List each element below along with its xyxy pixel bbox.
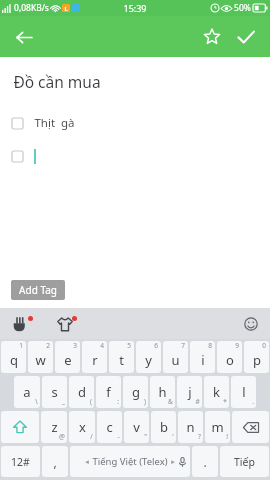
button[interactable]: l xyxy=(231,376,256,408)
staticText: Thịt gà xyxy=(34,115,75,131)
staticText: " xyxy=(144,432,147,441)
staticText: o xyxy=(226,351,234,369)
staticText: 0 xyxy=(262,341,266,350)
button[interactable]: s xyxy=(42,376,67,408)
staticText: y xyxy=(145,351,152,369)
button[interactable]: h xyxy=(150,376,175,408)
staticText: u xyxy=(171,351,180,369)
button[interactable]: n xyxy=(178,411,203,443)
staticText: , xyxy=(53,454,57,470)
button[interactable]: Emoji xyxy=(238,311,264,337)
staticText: . xyxy=(252,397,254,406)
staticText: c xyxy=(106,418,113,436)
staticText: h xyxy=(158,383,167,401)
button[interactable]: Themes xyxy=(52,311,78,337)
button[interactable]: , xyxy=(42,446,68,477)
button[interactable]: f xyxy=(96,376,121,408)
button[interactable]: 7 xyxy=(163,341,188,373)
button[interactable]: 5 xyxy=(109,341,134,373)
button[interactable]: 1 xyxy=(1,341,26,373)
staticText: 6 xyxy=(154,341,158,350)
staticText: 0,08KB/s xyxy=(14,2,49,14)
staticText: & xyxy=(168,397,173,406)
staticText: ( xyxy=(90,397,92,406)
staticText: @ xyxy=(59,432,65,441)
staticText: * xyxy=(223,397,227,406)
staticText: ▸ xyxy=(171,458,175,466)
staticText: p xyxy=(253,351,261,369)
staticText: : xyxy=(117,397,119,406)
staticText: v xyxy=(133,418,140,436)
button[interactable]: 8 xyxy=(190,341,215,373)
staticText: z xyxy=(51,418,58,436)
staticText: l xyxy=(242,383,246,401)
button[interactable]: 4 xyxy=(82,341,107,373)
button[interactable] xyxy=(0,145,270,167)
button[interactable]: 9 xyxy=(217,341,242,373)
staticText: - xyxy=(117,432,120,441)
staticText: a xyxy=(23,383,31,401)
button[interactable]: Favorite xyxy=(196,21,228,53)
button[interactable]: Thịt gà xyxy=(0,112,270,134)
staticText: Đồ cần mua xyxy=(13,71,101,92)
staticText: ' xyxy=(172,432,174,441)
staticText: 3 xyxy=(73,341,77,350)
staticText: ? xyxy=(198,432,201,441)
staticText: w xyxy=(35,351,46,369)
button[interactable]: Add Tag xyxy=(11,280,65,300)
staticText: _ xyxy=(62,397,65,406)
staticText: 15:39 xyxy=(123,2,147,14)
staticText: ) xyxy=(144,397,146,406)
staticText: Add Tag xyxy=(19,283,57,297)
staticText: ! xyxy=(226,432,228,441)
button[interactable]: c xyxy=(97,411,122,443)
button[interactable]: z xyxy=(41,411,67,443)
staticText: n xyxy=(186,418,195,436)
button[interactable]: 0 xyxy=(244,341,269,373)
staticText: 2 xyxy=(46,341,50,350)
button[interactable]: Tiếp xyxy=(220,446,269,477)
staticText: L xyxy=(64,5,68,12)
staticText: \ xyxy=(35,397,38,406)
button[interactable]: 12# xyxy=(1,446,40,477)
staticText: ◂ xyxy=(85,458,89,466)
button[interactable]: Back xyxy=(6,20,40,54)
button[interactable]: . xyxy=(192,446,218,477)
staticText: b xyxy=(160,418,168,436)
staticText: x xyxy=(79,418,86,436)
staticText: r xyxy=(92,351,98,369)
button[interactable]: v xyxy=(124,411,149,443)
staticText: / xyxy=(90,432,93,441)
button[interactable]: g xyxy=(123,376,148,408)
staticText: Tiếp xyxy=(234,455,255,469)
button[interactable]: k xyxy=(204,376,229,408)
button[interactable]: Shift xyxy=(1,411,39,443)
staticText: 7 xyxy=(181,341,185,350)
staticText: e xyxy=(64,351,72,369)
button[interactable]: x xyxy=(69,411,95,443)
staticText: . xyxy=(203,454,207,470)
button[interactable]: j xyxy=(177,376,202,408)
staticText: g xyxy=(132,383,140,401)
button[interactable]: 2 xyxy=(28,341,53,373)
staticText: f xyxy=(106,383,111,401)
button[interactable]: a xyxy=(14,376,40,408)
staticText: Tiếng Việt (Telex) xyxy=(92,455,168,468)
button[interactable]: 6 xyxy=(136,341,161,373)
button[interactable]: Backspace xyxy=(232,411,269,443)
staticText: s xyxy=(51,383,58,401)
button[interactable]: m xyxy=(205,411,230,443)
staticText: 50% xyxy=(234,2,251,14)
staticText: # xyxy=(195,397,200,406)
staticText: j xyxy=(188,383,192,401)
button[interactable]: Gesture input xyxy=(5,311,31,337)
button[interactable]: Done xyxy=(230,21,262,53)
button[interactable]: b xyxy=(151,411,176,443)
staticText: 5 xyxy=(127,341,131,350)
staticText: 1 xyxy=(19,341,23,350)
staticText: i xyxy=(201,351,205,369)
button[interactable]: ◂ xyxy=(70,446,190,477)
button[interactable]: 3 xyxy=(55,341,80,373)
button[interactable]: d xyxy=(69,376,94,408)
staticText: 8 xyxy=(208,341,212,350)
